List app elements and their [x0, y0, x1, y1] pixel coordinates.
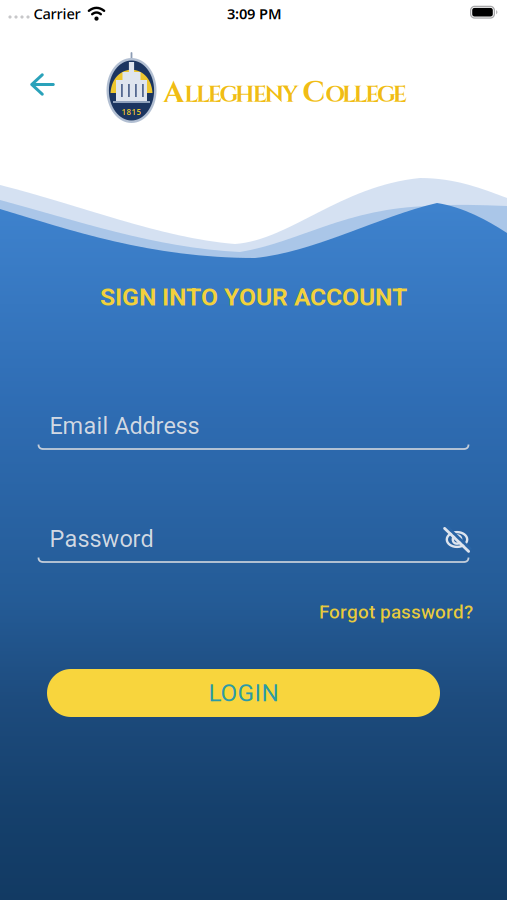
button[interactable]: Back: [30, 73, 56, 96]
button[interactable]: Password: [38, 520, 469, 564]
staticText: LLEGHENY: [184, 80, 298, 110]
staticText: SIGN INTO YOUR ACCOUNT: [100, 282, 407, 311]
staticText: Password: [49, 525, 153, 553]
button[interactable]: Email Address: [38, 407, 469, 451]
button[interactable]: Show password: [442, 525, 472, 553]
staticText: 1815: [121, 107, 141, 117]
staticText: Email Address: [49, 412, 199, 440]
staticText: C: [302, 73, 325, 113]
staticText: Carrier: [33, 4, 80, 23]
staticText: OLLEGE: [325, 80, 407, 110]
staticText: A: [163, 73, 184, 113]
staticText: LOGIN: [208, 679, 278, 707]
staticText: Forgot password?: [319, 601, 473, 623]
button[interactable]: Forgot password?: [319, 601, 473, 623]
staticText: 3:09 PM: [227, 4, 282, 23]
button[interactable]: LOGIN: [47, 669, 440, 717]
